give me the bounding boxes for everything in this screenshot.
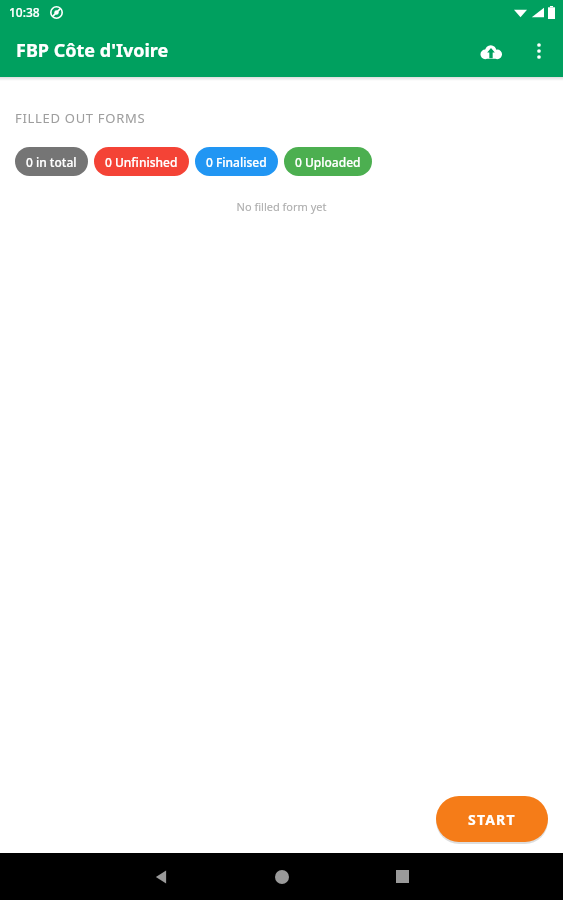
button[interactable]: 0 Finalised — [195, 147, 278, 176]
staticText: 0 Finalised — [206, 154, 267, 170]
button[interactable]: 0 Uploaded — [284, 147, 372, 176]
button[interactable]: More options — [515, 27, 563, 75]
button[interactable]: Upload — [467, 27, 515, 75]
staticText: 0 in total — [26, 154, 77, 170]
button[interactable]: Recents — [374, 853, 430, 900]
staticText: 10:38 — [9, 4, 40, 20]
button[interactable]: Home — [254, 853, 310, 900]
staticText: No filled form yet — [0, 199, 563, 214]
staticText: 0 Unfinished — [105, 154, 178, 170]
button[interactable]: 0 in total — [15, 147, 88, 176]
staticText: 0 Uploaded — [295, 154, 361, 170]
button[interactable]: Back — [133, 853, 189, 900]
button[interactable]: 0 Unfinished — [94, 147, 189, 176]
button[interactable]: START — [436, 796, 548, 842]
staticText: FILLED OUT FORMS — [15, 109, 146, 127]
staticText: START — [468, 810, 516, 829]
staticText: FBP Côte d'Ivoire — [16, 38, 169, 63]
